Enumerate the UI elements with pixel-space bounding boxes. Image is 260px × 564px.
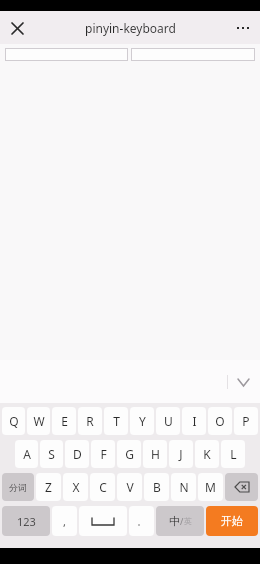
button[interactable]: B (144, 473, 169, 501)
staticText: Q (9, 413, 19, 429)
staticText: 英 (184, 516, 192, 526)
button[interactable]: L (221, 440, 245, 468)
staticText: U (164, 413, 173, 429)
button[interactable]: V (117, 473, 142, 501)
staticText: W (33, 413, 45, 429)
staticText: 中 (169, 514, 180, 528)
button[interactable]: W (27, 407, 50, 435)
staticText: F (100, 446, 107, 462)
staticText: Y (139, 413, 146, 429)
staticText: 开始 (221, 514, 243, 528)
staticText: R (86, 413, 94, 429)
staticText: E (61, 413, 68, 429)
button[interactable]: 123 (2, 506, 50, 536)
button[interactable]: O (208, 407, 232, 435)
button[interactable]: T (104, 407, 128, 435)
button[interactable]: Y (130, 407, 154, 435)
button[interactable]: K (195, 440, 219, 468)
staticText: P (242, 413, 250, 429)
button[interactable]: G (117, 440, 141, 468)
staticText: M (205, 479, 216, 495)
button[interactable]: Close (4, 15, 30, 41)
button[interactable]: E (52, 407, 76, 435)
button[interactable]: J (169, 440, 193, 468)
staticText: D (73, 446, 82, 462)
button[interactable]: I (182, 407, 206, 435)
staticText: J (179, 446, 183, 462)
button[interactable]: More options (230, 15, 256, 41)
button[interactable]: C (90, 473, 115, 501)
staticText: pinyin-keyboard (85, 20, 176, 36)
staticText: 。 (137, 516, 146, 527)
button[interactable]: Hide keyboard (229, 368, 257, 396)
button[interactable]: S (40, 440, 63, 468)
staticText: C (99, 479, 107, 495)
staticText: N (179, 479, 189, 495)
button[interactable]: R (78, 407, 102, 435)
button[interactable]: Q (2, 407, 25, 435)
staticText: X (72, 479, 80, 495)
button[interactable]: P (234, 407, 258, 435)
button[interactable]: Space (79, 506, 127, 536)
button[interactable]: 分词 (2, 473, 34, 501)
staticText: 123 (17, 514, 36, 529)
staticText: O (215, 413, 225, 429)
button[interactable]: Z (36, 473, 61, 501)
staticText: L (230, 446, 237, 462)
staticText: K (203, 446, 211, 462)
button[interactable]: 中 (156, 506, 204, 536)
button[interactable]: 开始 (206, 506, 258, 536)
button[interactable]: 。 (129, 506, 154, 536)
staticText: H (151, 446, 160, 462)
staticText: I (192, 413, 197, 429)
button[interactable]: F (91, 440, 115, 468)
button[interactable]: , (52, 506, 77, 536)
button[interactable]: N (171, 473, 196, 501)
staticText: A (23, 446, 31, 462)
button[interactable]: A (15, 440, 38, 468)
staticText: Z (45, 479, 52, 495)
staticText: S (48, 446, 55, 462)
staticText: T (113, 413, 120, 429)
staticText: G (125, 446, 134, 462)
staticText: B (153, 479, 161, 495)
button[interactable]: D (65, 440, 89, 468)
button[interactable]: Backspace (225, 473, 258, 501)
button[interactable]: U (156, 407, 180, 435)
button[interactable]: M (198, 473, 223, 501)
staticText: V (126, 479, 134, 495)
staticText: , (63, 514, 66, 529)
button[interactable]: X (63, 473, 88, 501)
staticText: 分词 (9, 482, 27, 493)
button[interactable]: H (143, 440, 167, 468)
staticText: / (180, 515, 184, 527)
